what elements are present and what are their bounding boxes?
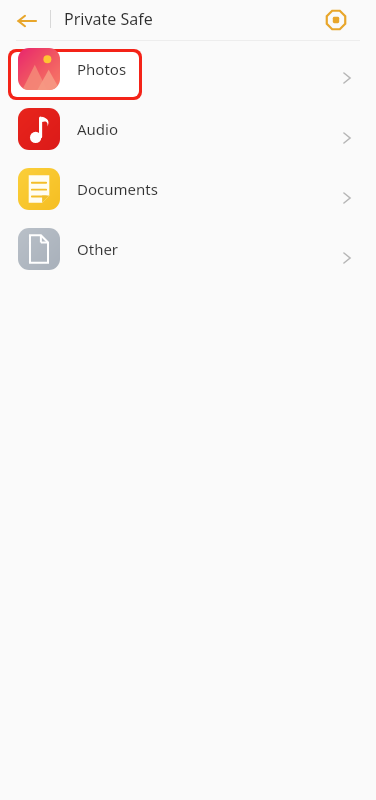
staticText: Photos xyxy=(77,59,127,79)
staticText: Documents xyxy=(77,179,158,199)
button[interactable]: Back xyxy=(12,6,42,36)
button[interactable]: Settings xyxy=(320,4,352,36)
button[interactable]: Photos xyxy=(0,48,376,108)
button[interactable]: Documents xyxy=(0,168,376,228)
staticText: Audio xyxy=(77,119,119,139)
button[interactable]: Audio xyxy=(0,108,376,168)
staticText: Other xyxy=(77,239,119,259)
staticText: Private Safe xyxy=(64,8,153,30)
button[interactable]: Other xyxy=(0,228,376,288)
